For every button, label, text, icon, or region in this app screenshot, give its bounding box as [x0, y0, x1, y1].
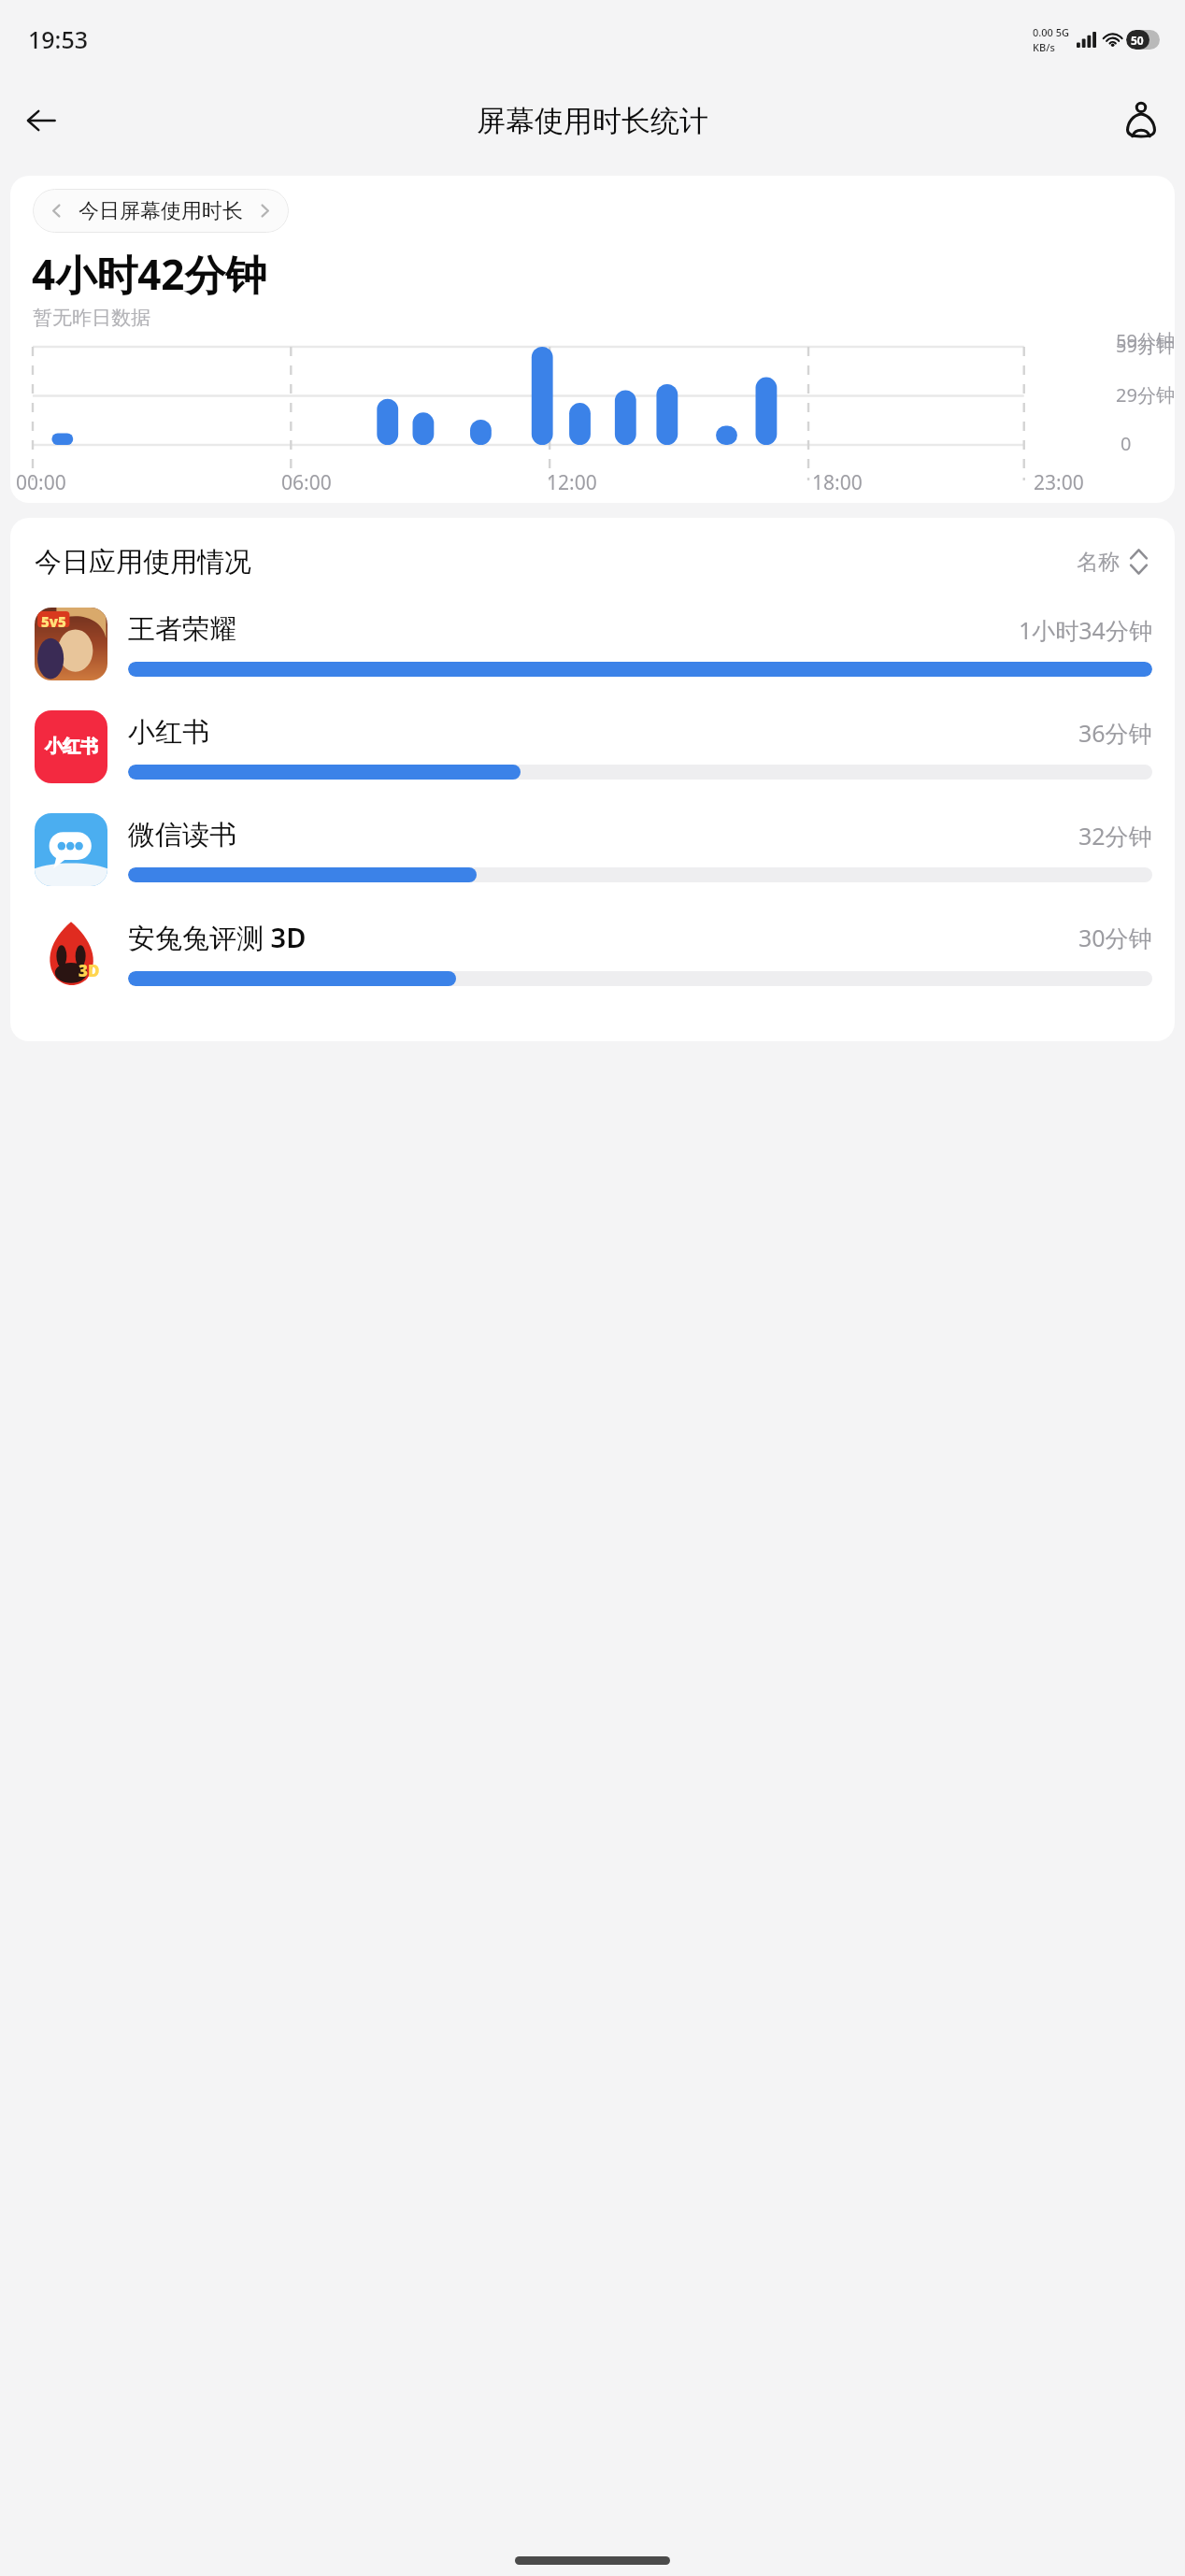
staticText: 屏幕使用时长统计 [477, 103, 708, 139]
button[interactable]: 微信读书 [10, 798, 1175, 901]
button[interactable]: 名称 [1073, 544, 1152, 580]
button[interactable]: Focus mode [1112, 92, 1170, 150]
staticText: 3D [79, 960, 100, 981]
staticText: 23:00 [1034, 469, 1084, 496]
staticText: 暂无昨日数据 [33, 306, 150, 330]
staticText: 名称 [1077, 549, 1120, 576]
staticText: 今日应用使用情况 [35, 545, 251, 580]
staticText: 50 [1131, 33, 1144, 48]
staticText: 30分钟 [1078, 922, 1152, 953]
staticText: 59分钟 [1116, 333, 1175, 358]
staticText: 29分钟 [1116, 382, 1175, 408]
button[interactable]: Back [13, 93, 69, 149]
button[interactable]: 小红书 [10, 695, 1175, 798]
staticText: 59分钟 [1116, 328, 1175, 353]
staticText: 今日屏幕使用时长 [79, 198, 243, 224]
button[interactable]: 3D [10, 901, 1175, 1004]
button[interactable]: 5v5 [10, 593, 1175, 695]
staticText: 18:00 [812, 469, 863, 496]
staticText: 1小时34分钟 [1019, 614, 1152, 646]
staticText: 5v5 [41, 612, 66, 631]
staticText: KB/s [1033, 40, 1055, 54]
staticText: 0.00 5G [1033, 25, 1070, 39]
staticText: 4小时42分钟 [32, 246, 267, 302]
staticText: 32分钟 [1078, 820, 1152, 852]
staticText: 12:00 [547, 469, 597, 496]
staticText: 36分钟 [1078, 717, 1152, 749]
staticText: 小红书 [128, 715, 209, 750]
staticText: 安兔兔评测 3D [128, 919, 307, 956]
staticText: 0 [1121, 431, 1132, 456]
button[interactable]: 今日屏幕使用时长 [33, 189, 289, 233]
staticText: 王者荣耀 [128, 612, 236, 647]
staticText: 微信读书 [128, 818, 236, 852]
staticText: 19:53 [28, 23, 89, 55]
staticText: 06:00 [281, 469, 332, 496]
staticText: 00:00 [16, 469, 66, 496]
staticText: 小红书 [45, 736, 98, 758]
